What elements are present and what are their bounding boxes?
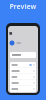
button[interactable]	[10, 80, 36, 86]
button[interactable]	[10, 74, 36, 80]
button[interactable]	[10, 68, 36, 74]
button[interactable]	[10, 52, 36, 58]
staticText: Preview	[9, 2, 36, 11]
button[interactable]	[9, 40, 35, 46]
button[interactable]	[10, 86, 36, 92]
button[interactable]: Menu	[9, 32, 12, 35]
button[interactable]	[10, 62, 36, 68]
